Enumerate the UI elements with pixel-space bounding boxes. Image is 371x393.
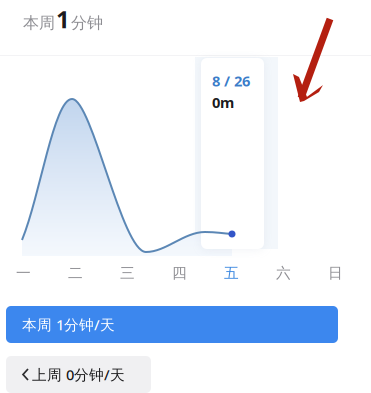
staticText: 日 [328, 264, 343, 282]
staticText: 0m [212, 92, 234, 112]
staticText: 上周 0分钟/天 [32, 365, 125, 384]
staticText: 三 [120, 264, 135, 282]
button[interactable]: 上周 0分钟/天 [6, 356, 151, 393]
staticText: 分钟 [71, 13, 103, 33]
staticText: 四 [172, 264, 187, 282]
staticText: 二 [68, 264, 83, 282]
staticText: 本周 1分钟/天 [22, 315, 115, 334]
staticText: 五 [224, 264, 239, 282]
staticText: 1 [56, 3, 70, 35]
button[interactable]: 本周 1分钟/天 [6, 306, 338, 343]
staticText: 8 / 26 [212, 71, 250, 90]
staticText: 一 [16, 264, 31, 282]
staticText: 六 [276, 264, 291, 282]
staticText: 本周 [23, 13, 55, 33]
